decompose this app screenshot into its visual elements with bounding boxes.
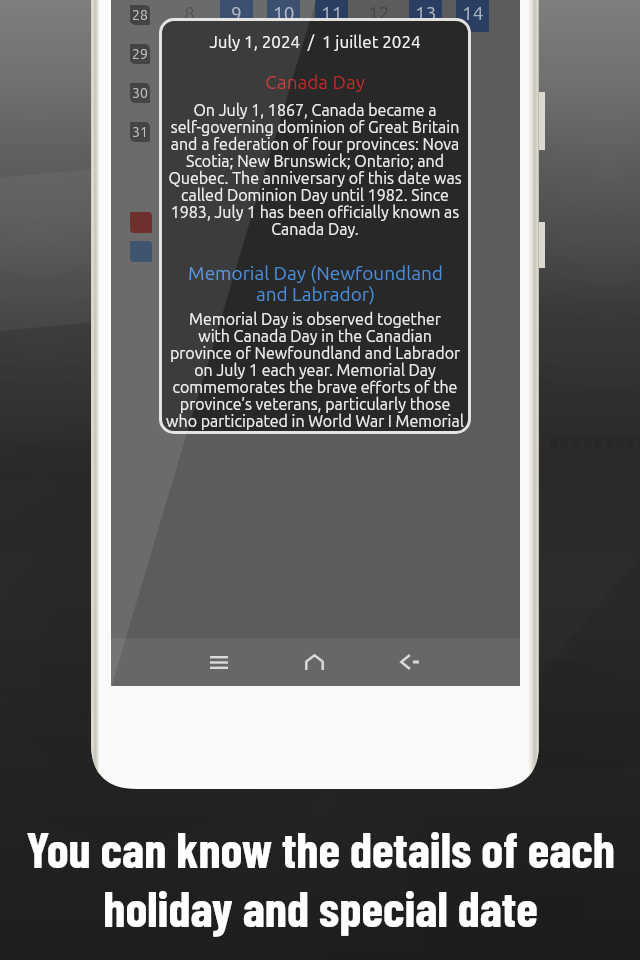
- button[interactable]: Menu: [189, 638, 249, 686]
- staticText: 8: [184, 2, 195, 23]
- staticText: On July 1, 1867, Canada became a self-go…: [168, 101, 462, 238]
- staticText: Memorial Day is observed together with C…: [166, 310, 464, 430]
- staticText: 12: [368, 2, 390, 23]
- staticText: 30: [132, 85, 148, 101]
- staticText: 28: [132, 7, 148, 23]
- staticText: 11: [321, 2, 343, 23]
- button[interactable]: Back: [380, 638, 440, 686]
- staticText: Memorial Day (Newfoundland and Labrador): [188, 262, 443, 304]
- staticText: 9: [231, 2, 242, 23]
- staticText: 13: [415, 2, 437, 23]
- staticText: Canada Day: [265, 71, 365, 92]
- staticText: 29: [132, 46, 148, 62]
- button[interactable]: Home: [284, 638, 344, 686]
- staticText: holiday and special date: [103, 877, 538, 936]
- staticText: 10: [273, 2, 295, 23]
- staticText: July 1, 2024 / 1 juillet 2024: [209, 32, 421, 51]
- staticText: 14: [462, 2, 484, 23]
- staticText: You can know the details of each: [26, 818, 615, 877]
- staticText: 31: [132, 124, 148, 140]
